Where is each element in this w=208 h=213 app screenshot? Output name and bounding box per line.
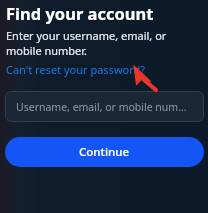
button[interactable]: Continue <box>5 137 204 167</box>
button[interactable]: Can't reset your password? <box>6 62 146 77</box>
staticText: Enter your username, email, or mobile nu… <box>6 28 204 58</box>
staticText: Can't reset your password? <box>6 62 146 77</box>
button[interactable]: Username, email, or mobile num... <box>5 91 204 122</box>
staticText: Continue <box>79 144 130 160</box>
other: Pointer annotation <box>0 0 208 213</box>
staticText: Username, email, or mobile num... <box>16 100 187 114</box>
staticText: Find your account <box>6 2 154 24</box>
